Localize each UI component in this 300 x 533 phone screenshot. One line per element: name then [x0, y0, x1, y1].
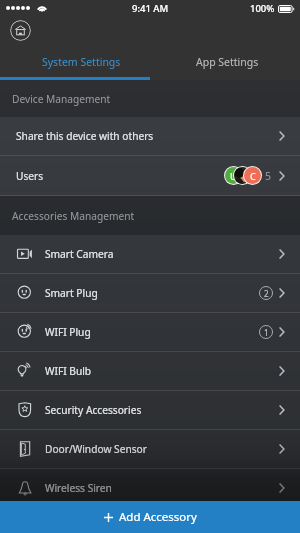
staticText: Smart Camera [45, 247, 114, 261]
staticText: WIFI Bulb [45, 364, 92, 378]
button[interactable]: Share this device with others [0, 117, 300, 155]
staticText: 9:41 AM [132, 2, 169, 15]
staticText: C [250, 170, 256, 182]
staticText: App Settings [196, 55, 259, 69]
staticText: Door/Window Sensor [45, 442, 147, 456]
button[interactable]: System Settings [0, 45, 150, 80]
staticText: Device Management [12, 92, 111, 106]
staticText: System Settings [42, 55, 121, 69]
staticText: Accessories Management [12, 209, 135, 223]
button[interactable]: Door/Window Sensor [0, 430, 300, 468]
button[interactable]: Users [0, 156, 300, 195]
staticText: 100% [250, 2, 275, 15]
staticText: Add Accessory [119, 509, 197, 525]
button[interactable]: App Settings [150, 45, 300, 80]
button[interactable]: Smart Camera [0, 235, 300, 273]
button[interactable]: Smart Plug [0, 274, 300, 312]
button[interactable]: Add Accessory [0, 501, 300, 533]
staticText: Smart Plug [45, 286, 98, 300]
staticText: Wireless Siren [45, 481, 112, 495]
staticText: U [230, 170, 237, 182]
staticText: 1 [264, 327, 269, 338]
staticText: WIFI Plug [45, 325, 91, 339]
button[interactable]: Wireless Siren [0, 469, 300, 507]
button[interactable]: WIFI Plug [0, 313, 300, 351]
staticText: 2 [264, 288, 269, 299]
staticText: Security Accessories [45, 403, 142, 417]
staticText: Users [16, 169, 44, 183]
staticText: 5 [265, 169, 272, 183]
button[interactable]: Home [10, 20, 31, 41]
button[interactable]: Security Accessories [0, 391, 300, 429]
staticText: Share this device with others [16, 129, 154, 143]
button[interactable]: WIFI Bulb [0, 352, 300, 390]
